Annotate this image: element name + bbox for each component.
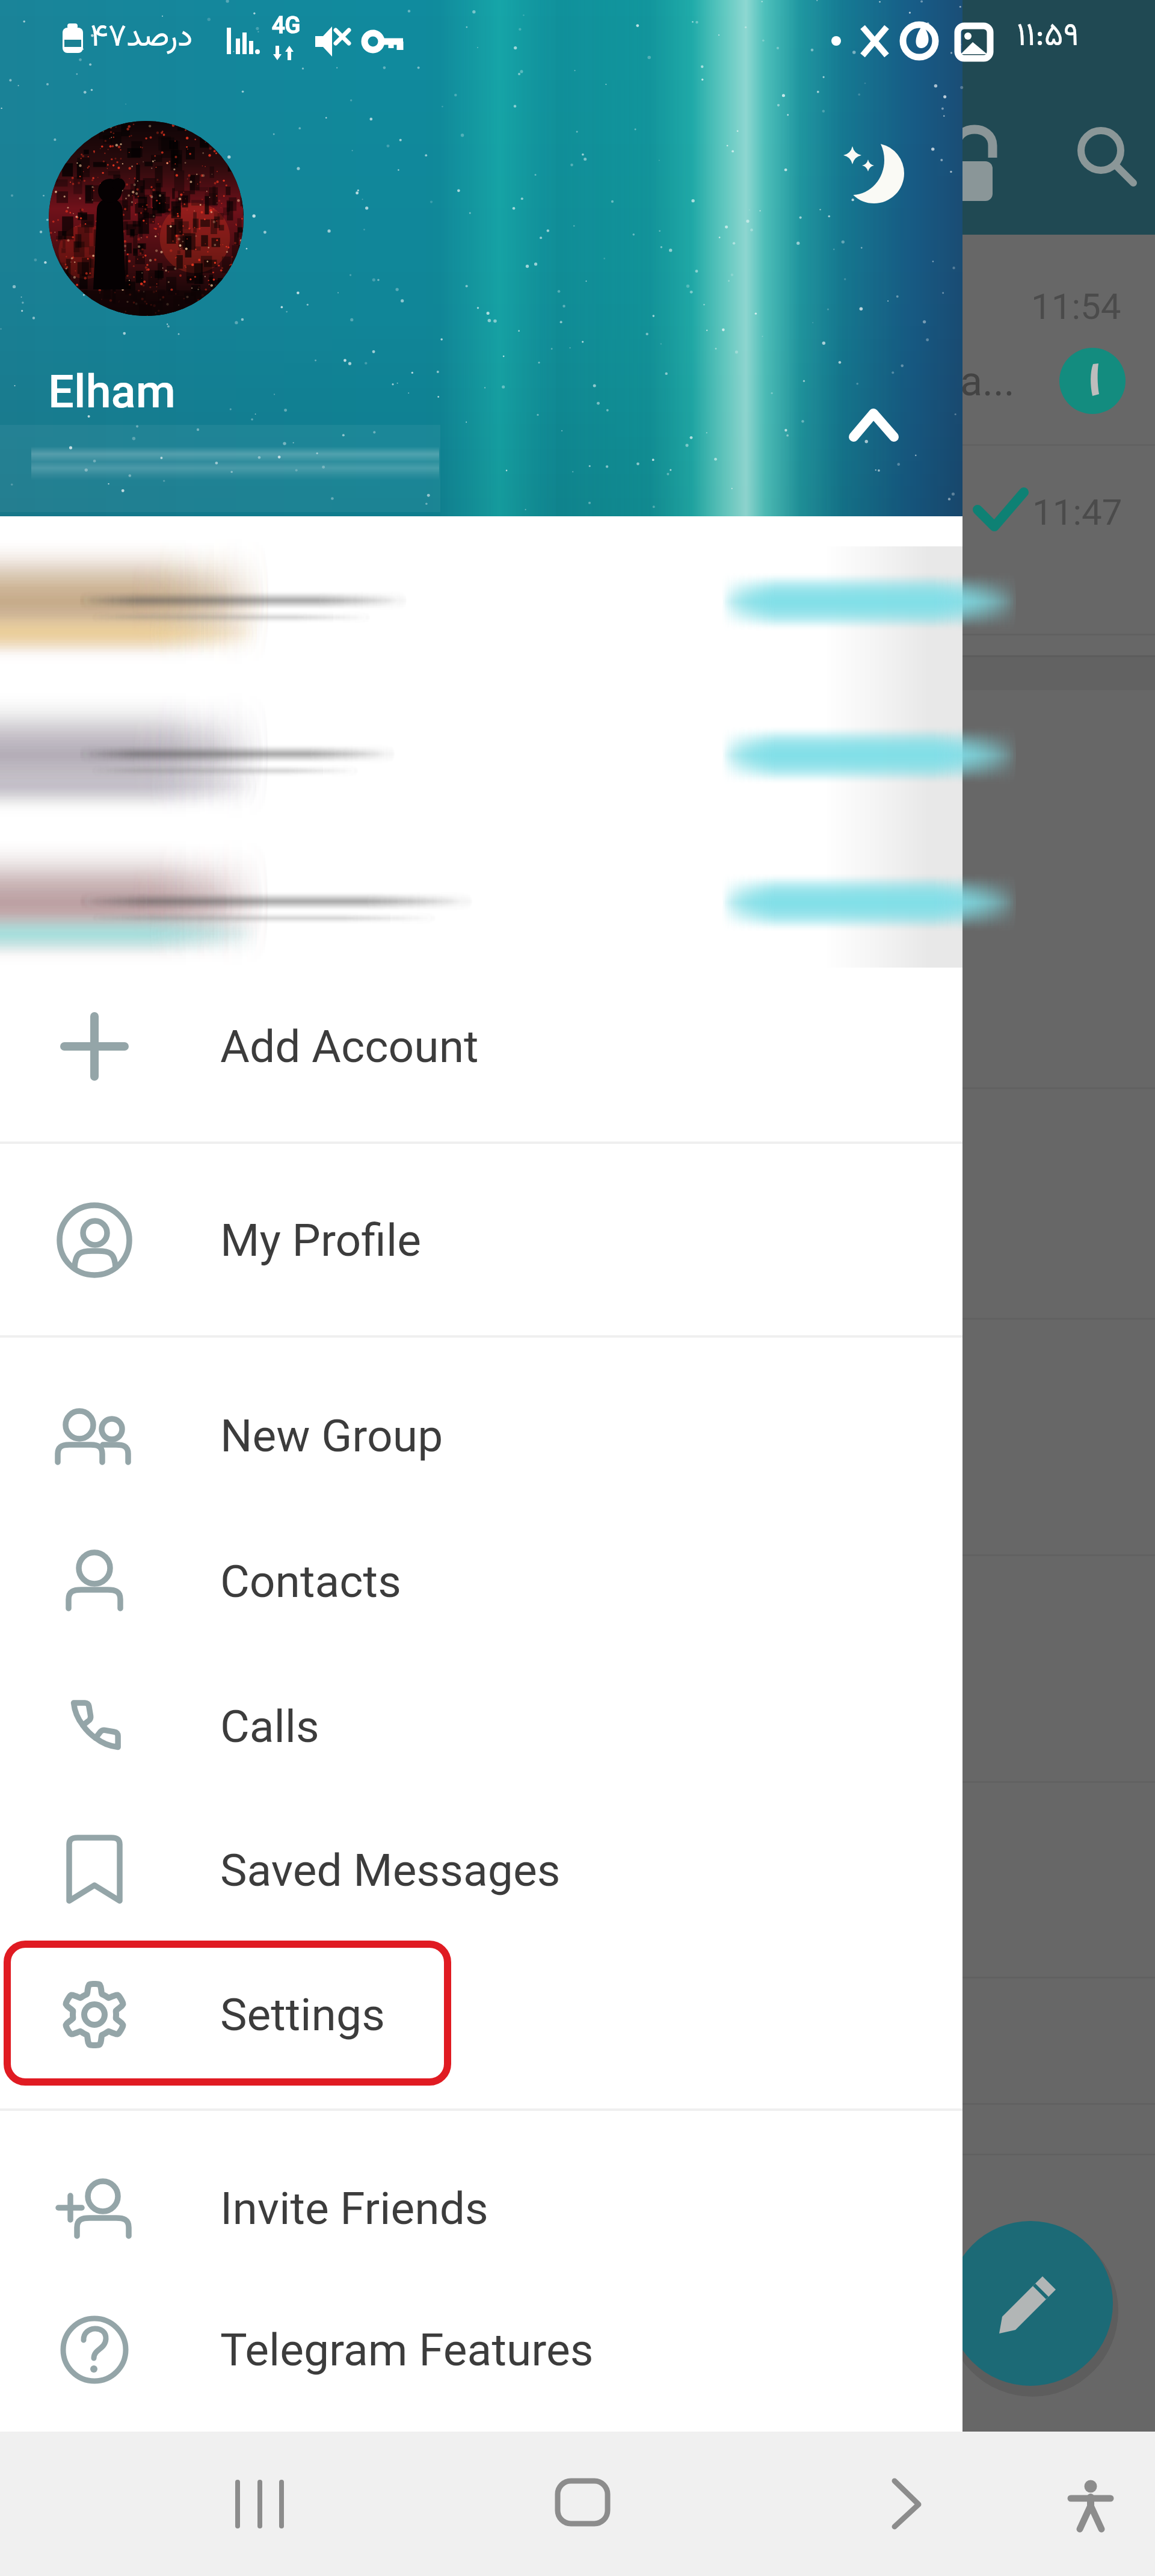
button[interactable]: Calls — [0, 1654, 962, 1799]
button[interactable]: Invite Friends — [0, 2136, 962, 2281]
button[interactable]: Accessibility — [1041, 2450, 1143, 2558]
staticText: Saved Messages — [220, 1844, 561, 1897]
staticText: New Group — [220, 1409, 443, 1462]
button[interactable]: Back — [854, 2450, 962, 2558]
button[interactable]: Recents — [211, 2450, 319, 2558]
staticText: Settings — [220, 1988, 385, 2041]
staticText: 4G — [272, 12, 301, 39]
staticText: Calls — [220, 1700, 319, 1753]
button[interactable]: Add Account — [0, 974, 962, 1119]
button[interactable]: Saved Messages — [0, 1798, 962, 1942]
button[interactable]: Home — [527, 2450, 635, 2558]
staticText: Invite Friends — [220, 2182, 488, 2235]
staticText: Telegram Features — [220, 2323, 594, 2376]
button[interactable]: Contacts — [0, 1509, 962, 1654]
button[interactable]: My Profile — [0, 1168, 962, 1312]
staticText: My Profile — [220, 1214, 421, 1267]
staticText: 11:47 — [1032, 491, 1123, 533]
button[interactable]: Settings — [0, 1942, 962, 2087]
staticText: Elham — [48, 365, 176, 418]
button[interactable]: Telegram Features — [0, 2278, 962, 2422]
staticText: ۱۱:۵۹ — [1017, 12, 1079, 63]
staticText: Add Account — [220, 1020, 479, 1073]
staticText: a... — [960, 357, 1015, 406]
staticText: Contacts — [220, 1555, 401, 1608]
staticText: ۴۷درصد — [90, 14, 193, 63]
button[interactable] — [0, 524, 962, 969]
staticText: 11:54 — [1031, 285, 1121, 327]
button[interactable]: New Group — [0, 1364, 962, 1508]
